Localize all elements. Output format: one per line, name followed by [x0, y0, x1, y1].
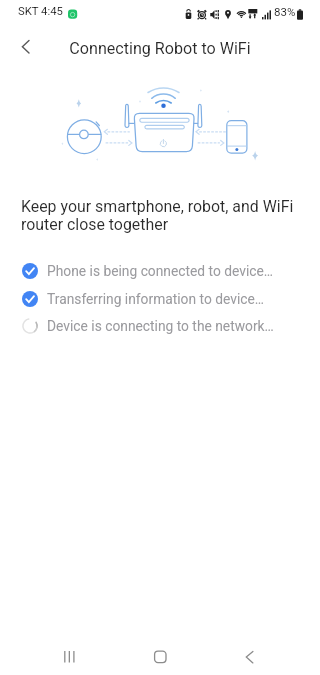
staticText: SKT 4:45: [18, 5, 63, 18]
button[interactable]: Home: [137, 644, 182, 675]
staticText: Transferring information to device…: [47, 291, 265, 307]
staticText: Connecting Robot to WiFi: [0, 39, 320, 58]
staticText: Device is connecting to the network…: [47, 318, 274, 334]
button[interactable]: Back: [227, 644, 272, 675]
button[interactable]: Back: [4, 24, 48, 68]
button[interactable]: Recent apps: [47, 644, 92, 675]
button[interactable]: Transferring information to device…: [0, 285, 320, 312]
staticText: Phone is being connected to device…: [47, 263, 274, 279]
staticText: 83%: [274, 5, 296, 18]
staticText: Keep your smartphone, robot, and WiFi ro…: [21, 197, 294, 234]
button[interactable]: Phone is being connected to device…: [0, 257, 320, 284]
button[interactable]: Device is connecting to the network…: [0, 312, 320, 339]
